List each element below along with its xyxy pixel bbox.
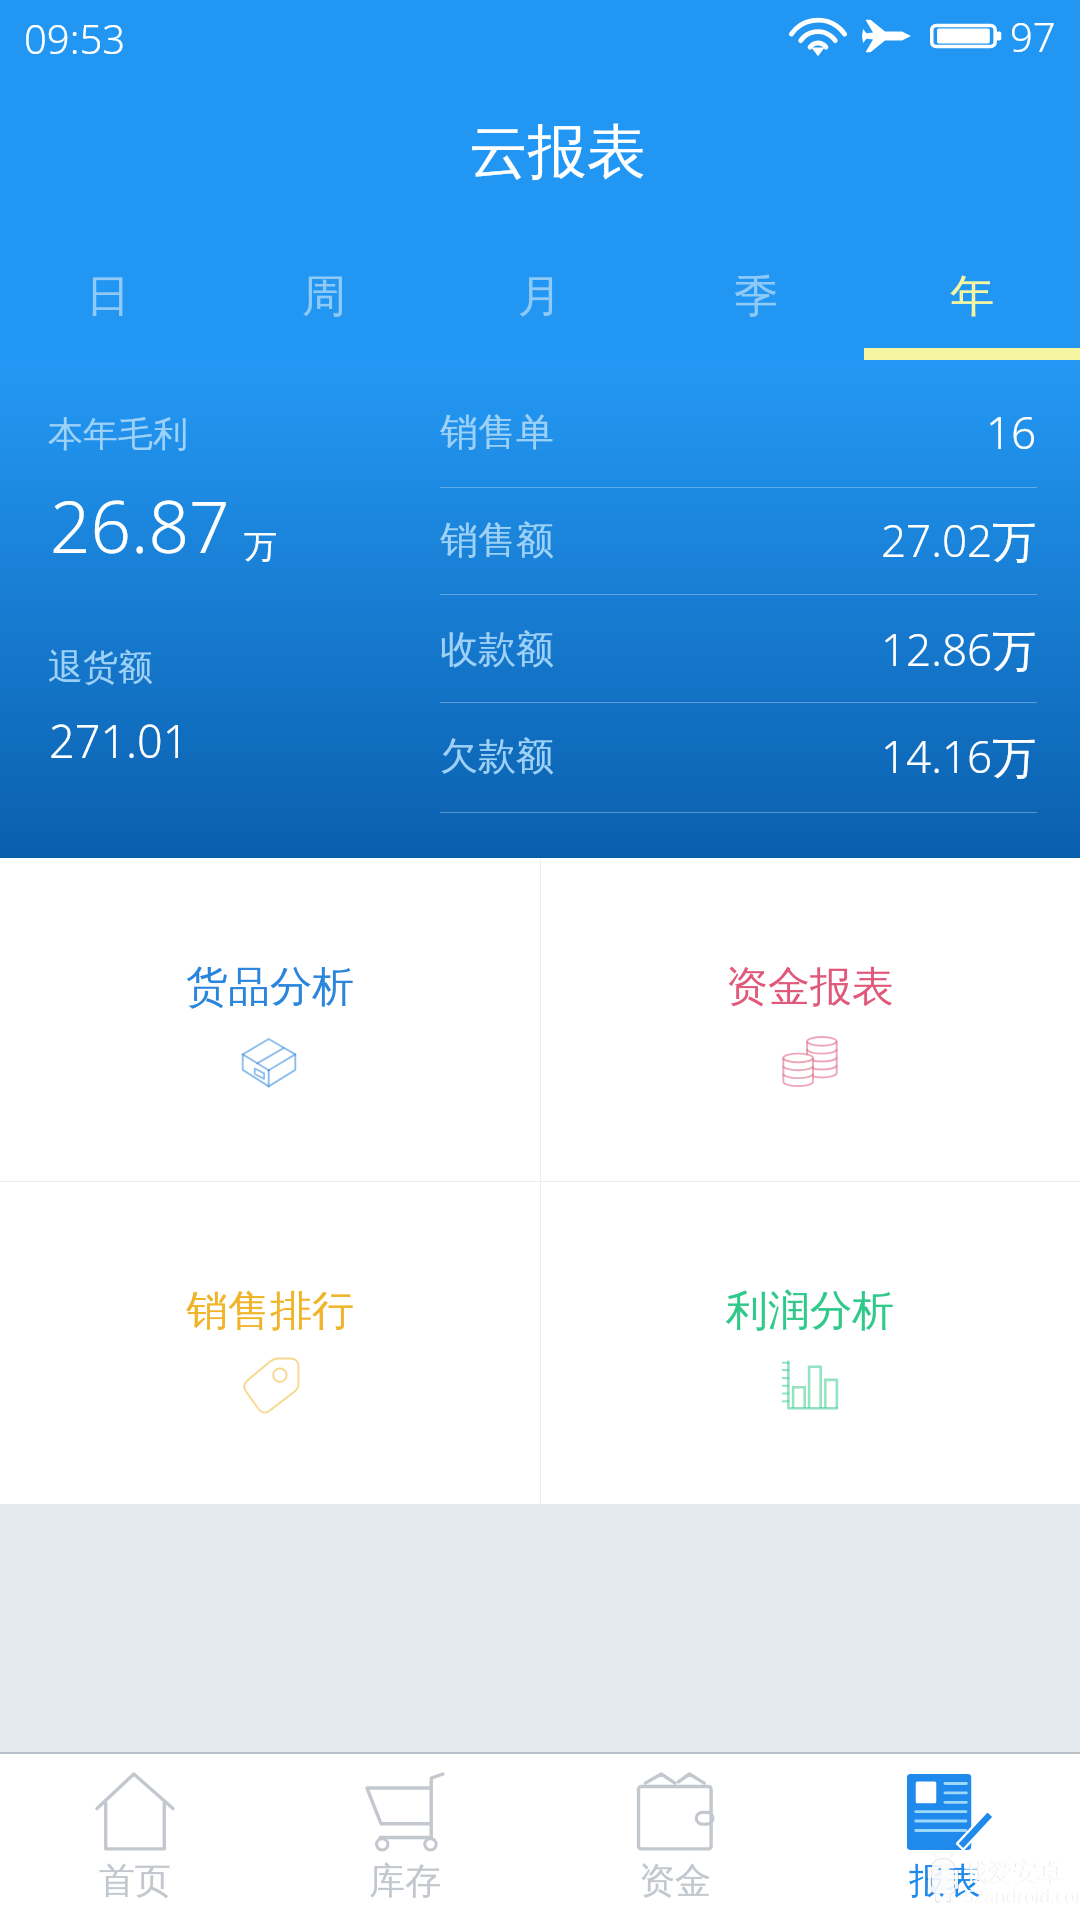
staticText: 月 (518, 269, 562, 324)
button[interactable]: 资金 (540, 1754, 810, 1920)
staticText: 52android.com (965, 1884, 1080, 1909)
staticText: 库存 (369, 1858, 441, 1903)
staticText: 销售额 (440, 516, 554, 564)
button[interactable]: 销售排行 (0, 1181, 540, 1504)
staticText: 日 (86, 269, 130, 324)
staticText: 欠款额 (440, 732, 554, 780)
button[interactable]: 报表 (810, 1754, 1080, 1920)
staticText: 271.01 (49, 710, 189, 771)
staticText: 16 (986, 402, 1037, 462)
staticText: 52android.com (964, 1884, 1080, 1909)
button[interactable]: 收款额 (440, 613, 1037, 685)
staticText: 14.16万 (881, 726, 1037, 786)
button[interactable]: 库存 (270, 1754, 540, 1920)
staticText: 首页 (99, 1858, 171, 1903)
button[interactable]: 首页 (0, 1754, 270, 1920)
button[interactable]: 货品分析 (0, 858, 540, 1181)
staticText: 我爱安卓 (963, 1857, 1063, 1888)
staticText: 本年毛利 (48, 412, 188, 456)
button[interactable]: 欠款额 (440, 720, 1037, 792)
staticText: 万 (244, 526, 277, 568)
staticText: 云报表 (469, 115, 646, 189)
staticText: 利润分析 (726, 1285, 894, 1338)
staticText: 销售排行 (186, 1285, 354, 1338)
button[interactable]: Month (432, 250, 648, 360)
staticText: 年 (950, 269, 994, 324)
staticText: 27.02万 (881, 510, 1037, 570)
button[interactable]: Quarter (648, 250, 864, 360)
staticText: 26.87 (50, 477, 230, 574)
staticText: 资金 (639, 1858, 711, 1903)
staticText: 09:53 (24, 11, 126, 65)
button[interactable]: Year (864, 250, 1080, 360)
staticText: 退货额 (48, 645, 153, 689)
button[interactable]: Day (0, 250, 216, 360)
button[interactable]: Week (216, 250, 432, 360)
staticText: 12.86万 (881, 619, 1037, 679)
staticText: 我爱安卓 (964, 1857, 1064, 1888)
staticText: 收款额 (440, 625, 554, 673)
button[interactable]: 资金报表 (540, 858, 1080, 1181)
button[interactable]: 销售单 (440, 396, 1037, 468)
staticText: 货品分析 (186, 961, 354, 1014)
staticText: 销售单 (440, 408, 554, 456)
staticText: 季 (734, 269, 778, 324)
button[interactable]: 利润分析 (540, 1181, 1080, 1504)
staticText: 报表 (909, 1858, 981, 1903)
button[interactable]: 销售额 (440, 504, 1037, 576)
staticText: 资金报表 (726, 961, 894, 1014)
staticText: 周 (302, 269, 346, 324)
staticText: 97 (1010, 9, 1056, 63)
